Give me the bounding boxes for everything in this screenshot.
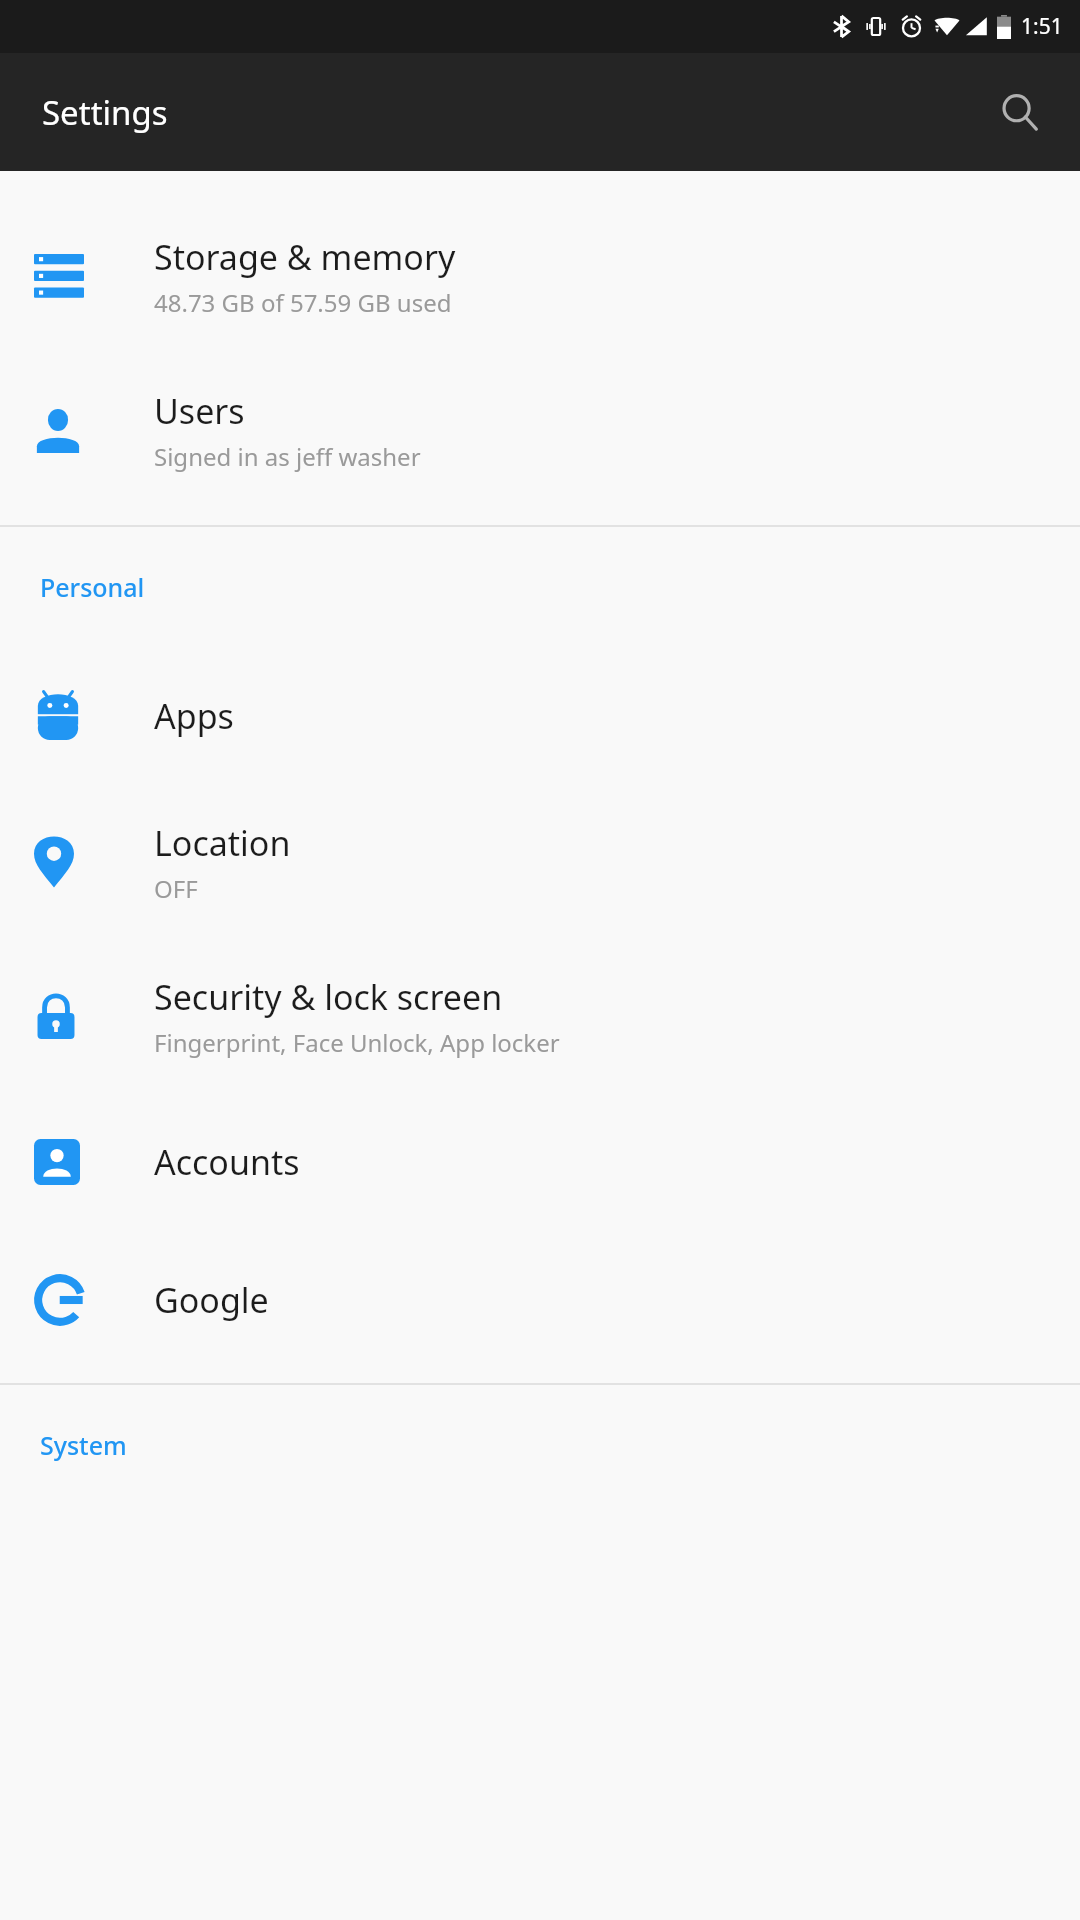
- button[interactable]: Google: [0, 1231, 1080, 1369]
- staticText: Personal: [40, 570, 145, 604]
- staticText: Settings: [42, 90, 168, 135]
- staticText: Location: [154, 820, 291, 866]
- button[interactable]: Users: [0, 353, 1080, 507]
- button[interactable]: Location: [0, 785, 1080, 939]
- staticText: Google: [154, 1277, 269, 1323]
- staticText: OFF: [154, 872, 198, 905]
- button[interactable]: Search: [984, 76, 1056, 148]
- staticText: Signed in as jeff washer: [154, 440, 421, 473]
- staticText: Users: [154, 388, 245, 434]
- staticText: 1:51: [1021, 12, 1063, 41]
- button[interactable]: Apps: [0, 647, 1080, 785]
- staticText: Storage & memory: [154, 234, 456, 280]
- button[interactable]: Accounts: [0, 1093, 1080, 1231]
- button[interactable]: Storage & memory: [0, 199, 1080, 353]
- staticText: System: [40, 1428, 127, 1462]
- staticText: Fingerprint, Face Unlock, App locker: [154, 1026, 560, 1059]
- button[interactable]: Security & lock screen: [0, 939, 1080, 1093]
- staticText: Accounts: [154, 1139, 300, 1185]
- staticText: Apps: [154, 693, 234, 739]
- staticText: Security & lock screen: [154, 974, 503, 1020]
- staticText: 48.73 GB of 57.59 GB used: [154, 286, 452, 319]
